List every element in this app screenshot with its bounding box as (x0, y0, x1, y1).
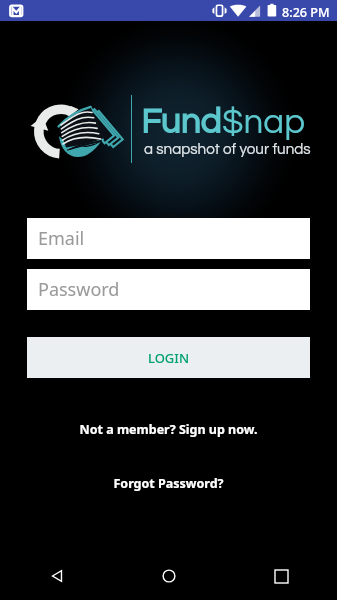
staticText: a snapshot of your funds (144, 142, 311, 158)
button[interactable]: Password (27, 269, 310, 310)
button[interactable]: LOGIN (27, 337, 310, 378)
staticText: Password (38, 277, 120, 302)
button[interactable]: Back (0, 552, 113, 600)
staticText: $nap (222, 104, 305, 140)
button[interactable]: Not a member? Sign up now. (0, 421, 337, 438)
staticText: Email (38, 226, 85, 251)
button[interactable]: Home (113, 552, 225, 600)
staticText: Fund (141, 104, 222, 140)
button[interactable]: Forgot Password? (0, 475, 337, 492)
button[interactable]: Recent apps (225, 552, 337, 600)
staticText: 8:26 PM (282, 4, 330, 21)
button[interactable]: Email (27, 218, 310, 259)
staticText: LOGIN (148, 349, 190, 367)
